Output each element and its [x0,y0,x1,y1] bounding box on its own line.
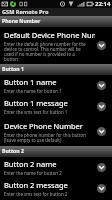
button[interactable]: Expand [97,163,106,172]
staticText: Button 2 [2,148,24,155]
staticText: GSM Remote Pro [2,8,49,16]
staticText: Button 1 message [4,98,68,108]
staticText: Default Device Phone Number [4,30,95,40]
button[interactable]: Expand [97,102,106,111]
staticText: Phone Number [2,18,41,25]
button[interactable]: Default Device Phone Number [0,27,112,64]
staticText: Button 1 name [4,77,57,87]
staticText: Enter the sms text for button 2 [4,191,68,197]
staticText: Enter the name for button 2 [4,170,62,176]
staticText: 22:14 [95,0,111,8]
staticText: Button 2 name [4,159,57,169]
button[interactable]: Button 2 message [0,178,112,199]
button[interactable]: Expand [97,81,106,90]
staticText: Button 1 [2,66,24,73]
button[interactable]: Button 1 name [0,75,112,96]
button[interactable]: Expand [97,41,106,50]
button[interactable]: Expand [97,184,106,193]
staticText: Device Phone Number [4,121,83,131]
staticText: Enter the phone number for this button (… [4,132,86,143]
staticText: Button 2 message [4,180,68,190]
button[interactable]: Expand [97,127,106,136]
staticText: Enter the name for button 1 [4,88,62,94]
staticText: Enter the default phone number for the d… [4,41,86,62]
button[interactable]: Device Phone Number [0,117,112,146]
button[interactable]: Button 2 name [0,157,112,178]
button[interactable]: Button 1 message [0,96,112,117]
staticText: Enter the sms text for button 1 [4,109,68,115]
